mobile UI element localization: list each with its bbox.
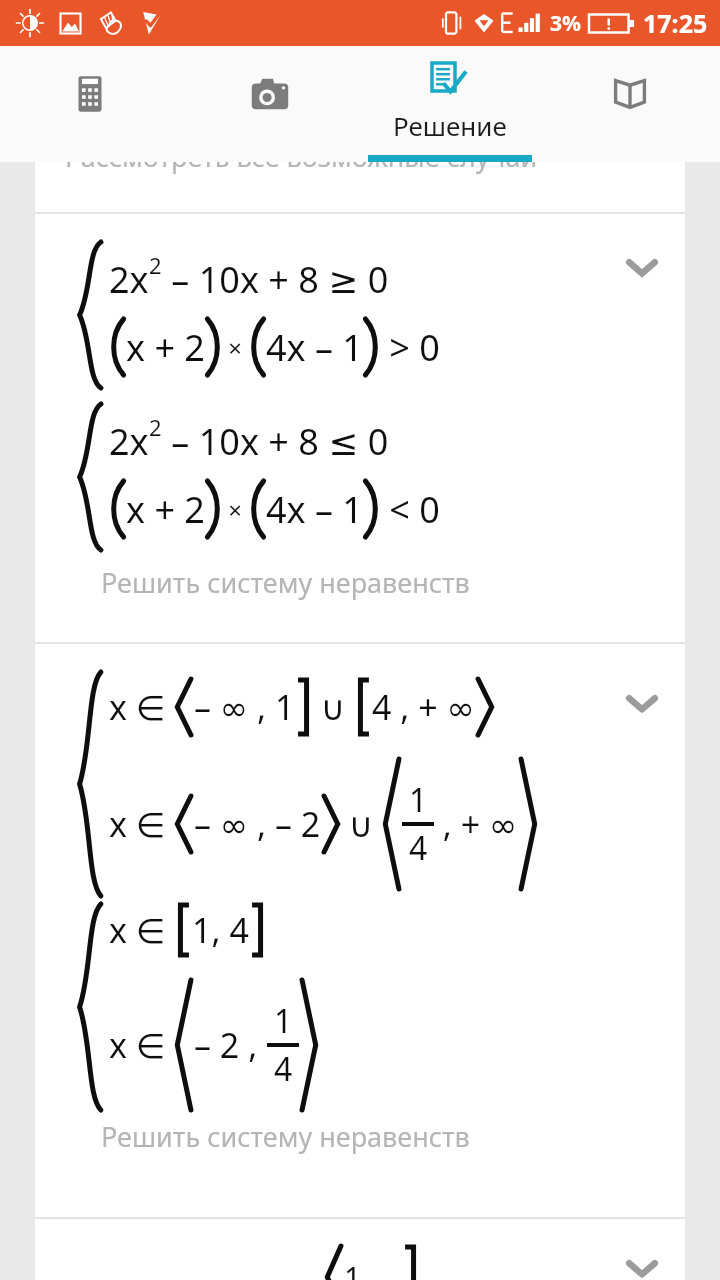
button[interactable]: Camera bbox=[180, 46, 360, 162]
staticText: Решить систему неравенств bbox=[101, 1118, 470, 1155]
staticText: – 2 , bbox=[194, 1022, 267, 1068]
button[interactable]: Expand step bbox=[619, 680, 665, 726]
staticText: < 0 bbox=[380, 485, 440, 534]
staticText: x + 2 bbox=[126, 485, 205, 534]
staticText: – 10x + 8 ≥ 0 bbox=[162, 255, 389, 304]
staticText: x ∈ bbox=[109, 801, 175, 847]
button[interactable]: Решение bbox=[360, 46, 540, 162]
staticText: 4 bbox=[409, 826, 428, 870]
staticText: > 0 bbox=[380, 323, 440, 372]
staticText: x ∈ bbox=[109, 1022, 175, 1068]
staticText: × bbox=[222, 331, 249, 364]
staticText: Решение bbox=[393, 108, 507, 143]
staticText: Рассмотреть все возможные случаи bbox=[65, 138, 538, 175]
staticText: x ∈ bbox=[109, 684, 175, 730]
button[interactable]: Book bbox=[540, 46, 720, 162]
button[interactable]: Expand step bbox=[619, 1245, 665, 1280]
button[interactable]: Expand step bbox=[35, 1219, 685, 1280]
staticText: 2 bbox=[149, 412, 162, 442]
staticText: ∪ bbox=[340, 801, 383, 847]
staticText: 17:25 bbox=[643, 6, 708, 40]
staticText: × bbox=[222, 493, 249, 526]
staticText: 4 bbox=[274, 1047, 293, 1091]
staticText: – ∞ , – 2 bbox=[194, 801, 321, 847]
staticText: x ∈ bbox=[109, 907, 175, 953]
staticText: 2 bbox=[149, 250, 162, 280]
staticText: 2x bbox=[109, 255, 149, 304]
button[interactable]: Calculator bbox=[0, 46, 180, 162]
staticText: 1 bbox=[409, 778, 428, 822]
staticText: – ∞ , 1 bbox=[194, 684, 295, 730]
staticText: 4x – 1 bbox=[266, 323, 363, 372]
button[interactable]: Expand step bbox=[35, 644, 685, 1217]
staticText: x + 2 bbox=[126, 323, 205, 372]
button[interactable]: Expand step bbox=[619, 244, 665, 290]
staticText: – 10x + 8 ≤ 0 bbox=[162, 417, 389, 466]
staticText: 2x bbox=[109, 417, 149, 466]
staticText: ∪ bbox=[312, 684, 355, 730]
staticText: 1, 4 bbox=[192, 907, 249, 953]
staticText: 4x – 1 bbox=[266, 485, 363, 534]
staticText: 1 bbox=[344, 1257, 362, 1280]
staticText: , + ∞ bbox=[434, 801, 518, 847]
staticText: 4 , + ∞ bbox=[372, 684, 475, 730]
staticText: Решить систему неравенств bbox=[101, 564, 470, 601]
staticText: 1 bbox=[274, 999, 293, 1043]
staticText: 3% bbox=[550, 9, 581, 38]
button[interactable]: Expand step bbox=[35, 214, 685, 642]
